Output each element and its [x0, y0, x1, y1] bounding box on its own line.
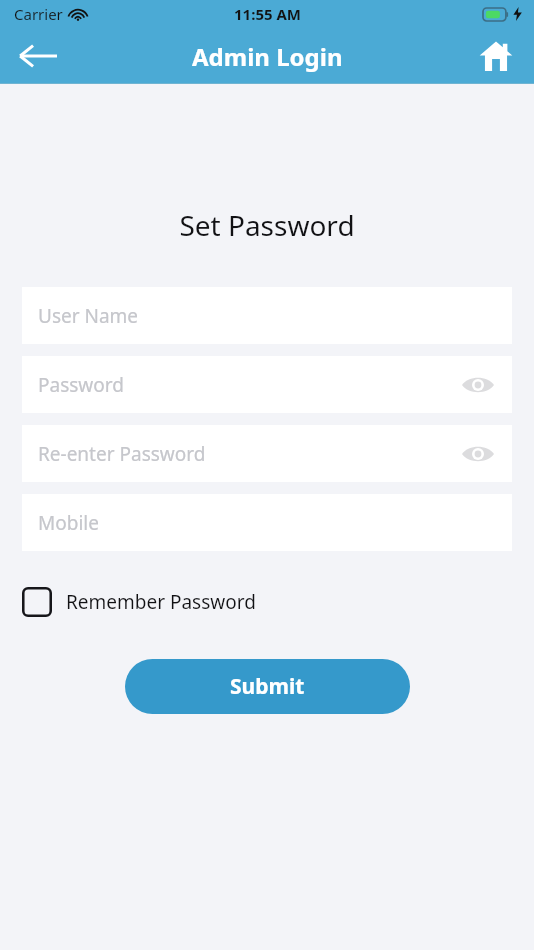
button[interactable]: Back — [12, 30, 64, 82]
staticText: Submit — [230, 672, 305, 701]
button[interactable]: Show password — [456, 363, 500, 407]
staticText: 11:55 AM — [234, 4, 301, 24]
staticText: User Name — [38, 303, 139, 329]
button[interactable]: Remember Password — [22, 585, 256, 619]
staticText: Password — [38, 372, 124, 398]
button[interactable]: Home — [472, 32, 520, 80]
button[interactable]: User Name — [22, 287, 512, 344]
staticText: Re-enter Password — [38, 441, 206, 467]
staticText: Set Password — [0, 206, 534, 244]
staticText: Carrier — [14, 4, 63, 24]
button[interactable]: Re-enter Password — [22, 425, 512, 482]
staticText: Mobile — [38, 510, 99, 536]
button[interactable]: Password — [22, 356, 512, 413]
button[interactable]: Show password — [456, 432, 500, 476]
button[interactable]: Mobile — [22, 494, 512, 551]
staticText: Remember Password — [66, 589, 256, 615]
staticText: Admin Login — [192, 40, 343, 73]
button[interactable]: Submit — [125, 659, 410, 714]
